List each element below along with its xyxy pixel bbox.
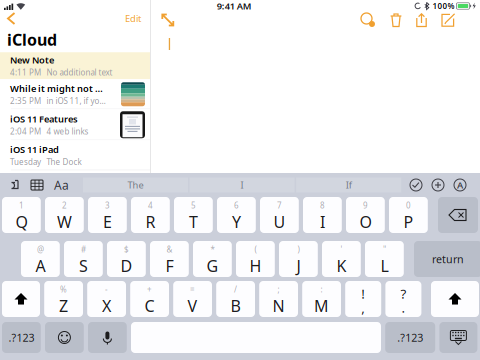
button[interactable]: Add media [355,11,381,29]
button[interactable]: 8 [303,197,342,233]
button[interactable]: @ [21,241,60,277]
button[interactable]: ' [322,241,361,277]
button[interactable]: Share [411,11,432,29]
button[interactable]: iOS 11 iPad [0,140,150,170]
button[interactable]: 7 [260,197,299,233]
staticText: E [103,211,112,232]
staticText: in iOS 11, if you don'… [46,96,105,106]
button[interactable]: The [83,177,188,192]
button[interactable]: Shift [2,281,40,317]
staticText: ? [400,285,406,302]
staticText: Edit [125,12,141,25]
staticText: P [403,211,413,232]
button[interactable]: 4 [131,197,170,233]
staticText: O [359,211,371,232]
button[interactable]: Markup [449,176,471,194]
button[interactable]: & [150,241,189,277]
button[interactable]: ? [385,281,421,317]
staticText: .?123 [8,330,34,345]
staticText: $ [124,244,129,255]
staticText: R [145,211,155,232]
button[interactable]: # [64,241,103,277]
button[interactable]: Emoji [45,322,84,353]
button[interactable]: Delete [384,11,408,29]
button[interactable]: 0 [389,197,428,233]
staticText: 5 [191,200,196,211]
button[interactable]: Table [31,175,54,195]
button[interactable]: $ [107,241,146,277]
button[interactable]: Expand [151,11,185,29]
button[interactable]: = [173,281,212,317]
staticText: No additional text [46,67,112,78]
button[interactable]: 2 [45,197,84,233]
button[interactable]: Dictate [88,322,127,353]
staticText: 4 web links [46,126,88,137]
button[interactable]: * [193,241,232,277]
staticText: A [35,255,45,276]
button[interactable]: ! [345,281,381,317]
staticText: 4 [148,200,153,211]
staticText: S [79,255,88,276]
staticText: + [147,284,152,295]
staticText: 3 [105,200,110,211]
staticText: If [346,179,352,191]
button[interactable]: .?123 [385,322,435,353]
button[interactable]: While it might not look lik… [0,79,150,109]
button[interactable]: Delete [438,197,478,233]
button[interactable]: If [296,177,401,192]
button[interactable]: iOS 11 Features [0,109,150,140]
button[interactable]: 6 [217,197,256,233]
button[interactable]: / [216,281,255,317]
staticText: 2:04 PM [10,126,41,137]
staticText: , [361,299,365,316]
button[interactable]: ( [236,241,275,277]
staticText: ' [340,244,342,255]
staticText: U [273,211,285,232]
button[interactable]: I [190,177,295,192]
button[interactable]: - [87,281,126,317]
staticText: Q [15,211,27,232]
button[interactable]: 3 [88,197,127,233]
staticText: iCloud [7,29,57,50]
button[interactable]: Back [0,10,24,27]
button[interactable]: return [414,241,480,277]
staticText: Tuesday [10,157,41,167]
button[interactable]: " [365,241,404,277]
staticText: / [234,284,237,295]
staticText: The [127,179,143,191]
staticText: A [457,179,463,191]
staticText: T [189,211,198,232]
button[interactable]: Dismiss keyboard [439,322,477,353]
button[interactable]: Shift [431,281,479,317]
button[interactable]: 9 [346,197,385,233]
button[interactable]: + [130,281,169,317]
button[interactable]: 1 [2,197,41,233]
button[interactable]: New Note [0,52,150,79]
button[interactable]: % [44,281,83,317]
button[interactable]: 5 [174,197,213,233]
staticText: - [105,284,108,295]
staticText: ) [297,244,299,255]
button[interactable]: Undo [0,175,31,195]
button[interactable]: Format [54,175,83,195]
staticText: 9:41 AM [217,0,252,12]
staticText: @ [37,244,44,255]
button[interactable]: : [302,281,341,317]
staticText: W [57,211,72,232]
staticText: Z [59,295,68,316]
staticText: I [241,179,244,191]
staticText: 7 [277,200,282,211]
button[interactable]: .?123 [2,322,41,353]
staticText: % [60,284,67,295]
staticText: C [145,295,155,316]
button[interactable]: Edit [116,10,150,27]
staticText: 2:35 PM [10,96,41,106]
button[interactable]: ; [259,281,298,317]
button[interactable]: Add [427,176,449,194]
staticText: 2 [62,200,67,211]
button[interactable]: ) [279,241,318,277]
button[interactable]: Done [405,176,427,194]
staticText: . [401,299,405,316]
button[interactable]: Compose [436,11,460,29]
